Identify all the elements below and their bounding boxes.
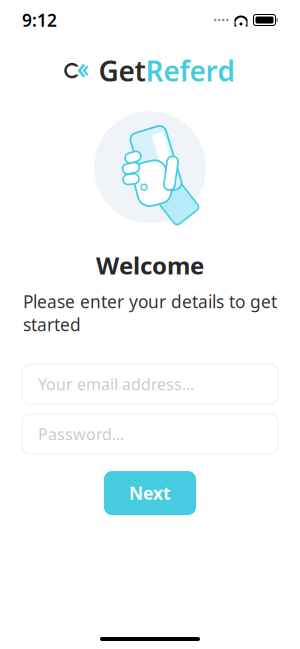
staticText: Please enter your details to get started bbox=[23, 290, 277, 336]
staticText: 9:12 bbox=[22, 8, 57, 31]
staticText: Referd bbox=[145, 52, 235, 89]
staticText: Welcome bbox=[96, 249, 204, 281]
staticText: Your email address... bbox=[38, 373, 194, 395]
staticText: Get bbox=[98, 52, 145, 89]
button[interactable]: Next bbox=[104, 471, 196, 515]
staticText: Password... bbox=[38, 423, 124, 445]
staticText: Next bbox=[129, 482, 171, 505]
